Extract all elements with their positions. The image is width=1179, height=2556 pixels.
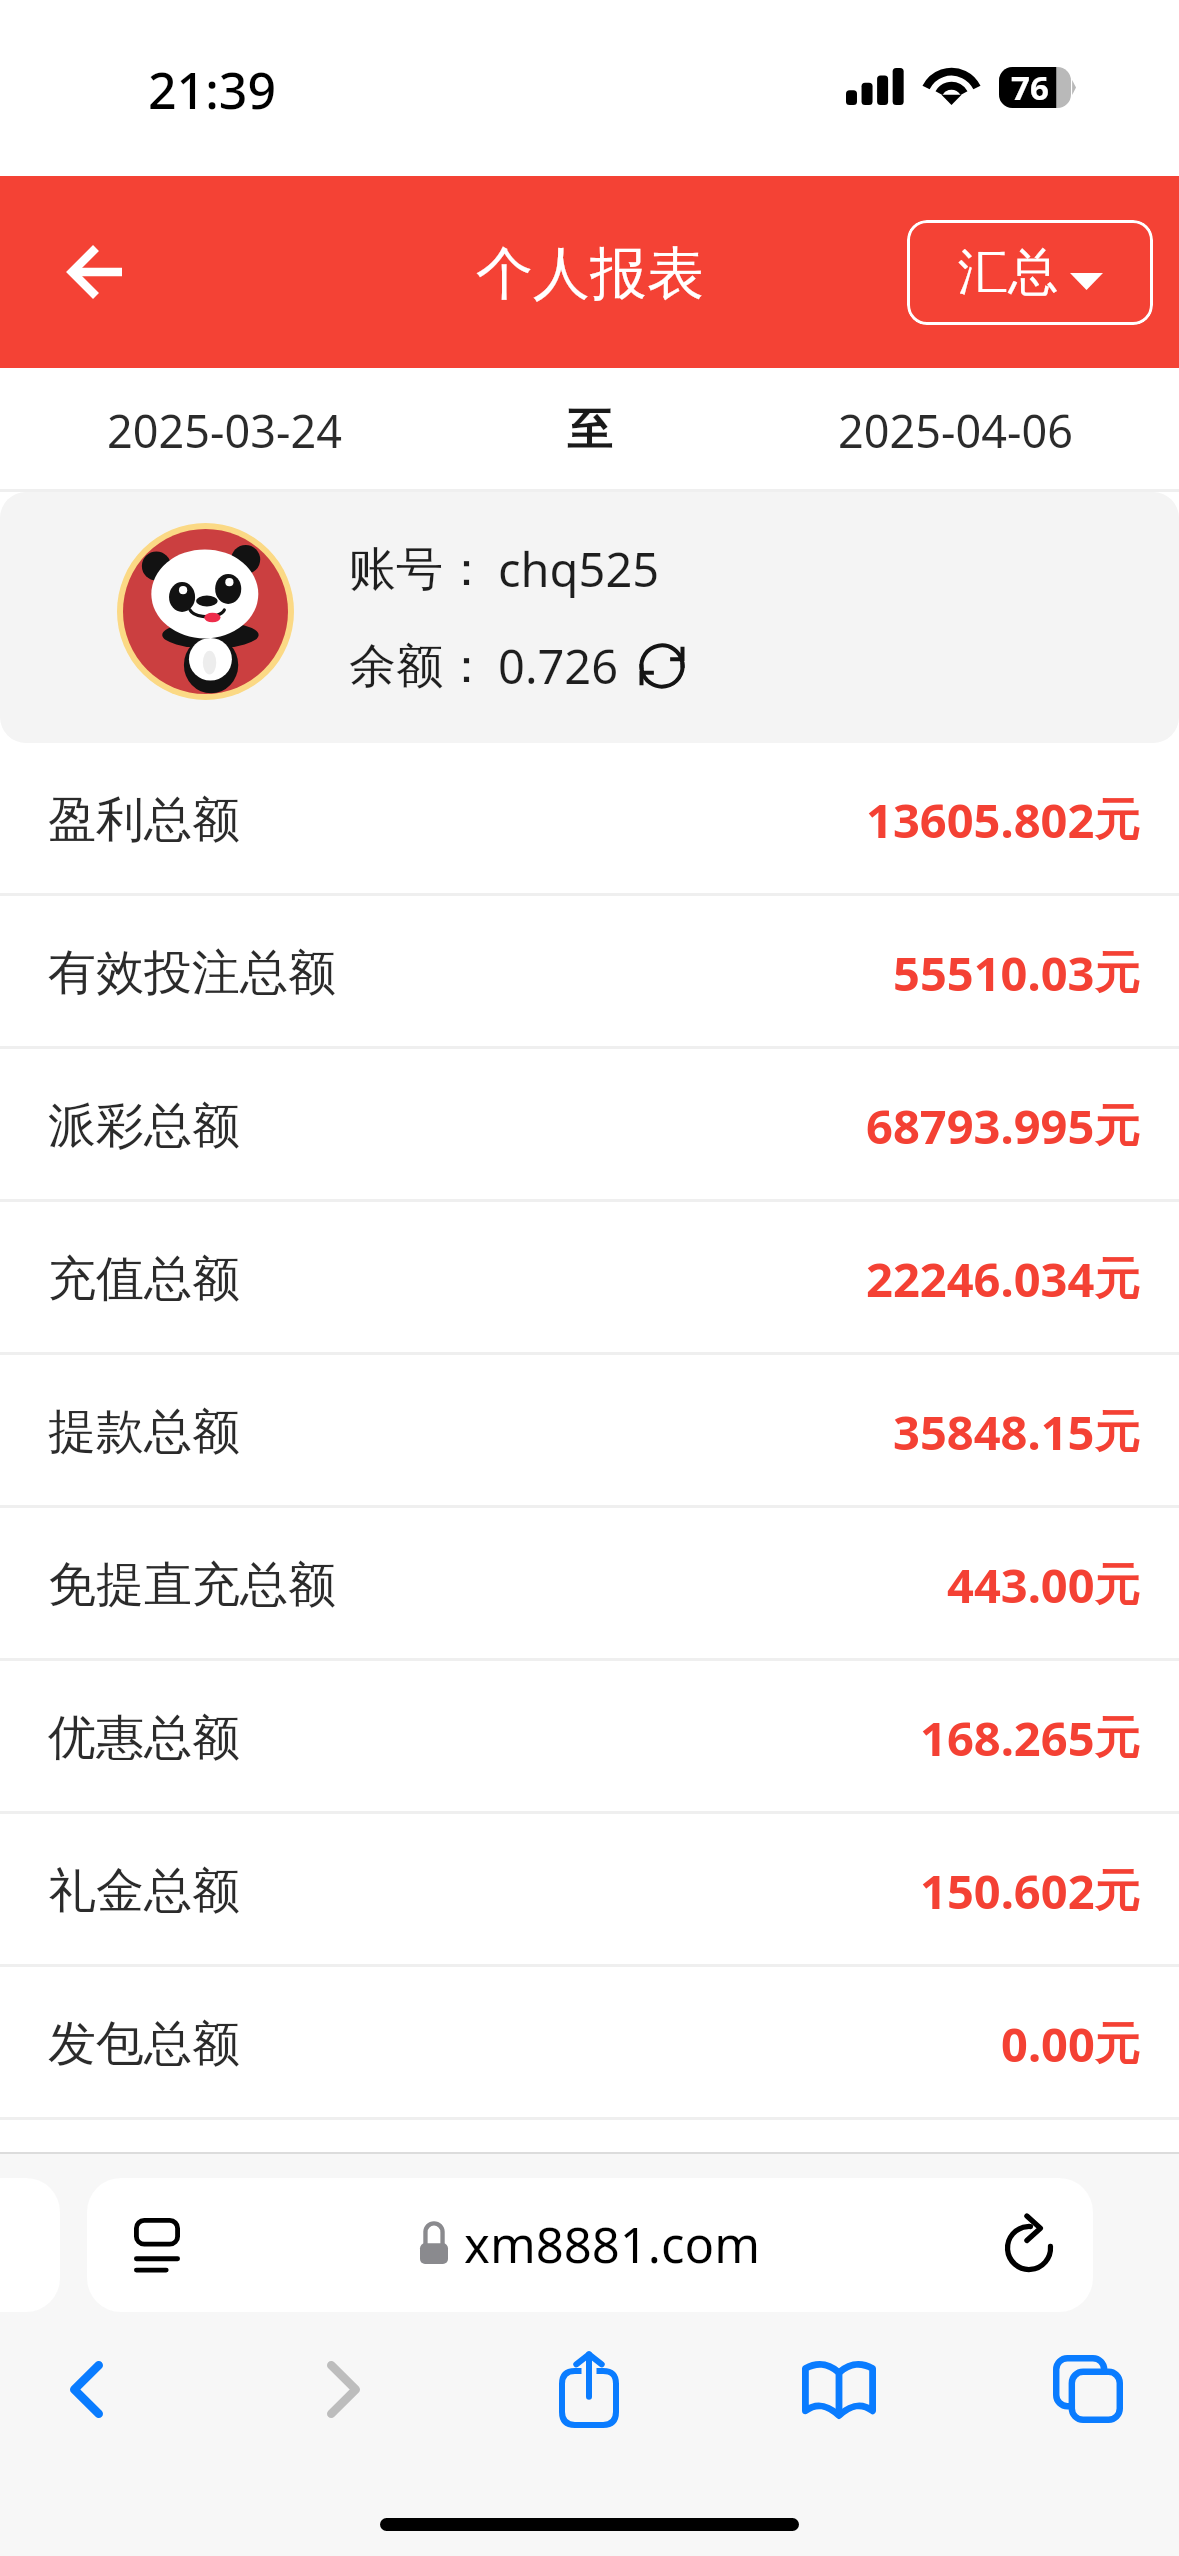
staticText: 派彩总额 [48,1096,240,1156]
staticText: 免提直充总额 [48,1555,336,1615]
staticText: 元 [1095,945,1140,1002]
staticText: 优惠总额 [48,1708,240,1768]
staticText: 168.265 [920,1706,1095,1770]
staticText: 元 [1095,1251,1140,1308]
staticText: chq525 [498,537,660,601]
button[interactable]: 发包总额 [0,1967,1179,2120]
staticText: 余额 [349,637,443,696]
staticText: 盈利总额 [48,790,240,850]
button[interactable]: 礼金总额 [0,1814,1179,1967]
staticText: 至 [567,402,612,459]
button[interactable]: Back [40,2343,132,2435]
staticText: 元 [1095,2016,1140,2073]
button[interactable]: 有效投注总额 [0,896,1179,1049]
button[interactable]: 盈利总额 [0,743,1179,896]
staticText: 元 [1095,1710,1140,1767]
staticText: 76 [1011,65,1049,106]
button[interactable]: Share [543,2343,635,2435]
button[interactable]: 免提直充总额 [0,1508,1179,1661]
staticText: 443.00 [947,1553,1095,1617]
button[interactable]: 提款总额 [0,1355,1179,1508]
button[interactable]: Reload [981,2198,1075,2292]
button[interactable]: Bookmarks [793,2343,885,2435]
staticText: 汇总 [958,241,1058,304]
staticText: 21:39 [148,56,276,124]
staticText: 13605.802 [866,788,1095,852]
staticText: 有效投注总额 [48,943,336,1003]
button[interactable]: Page settings [87,2178,1093,2312]
staticText: ： [443,540,477,599]
staticText: 元 [1095,1863,1140,1920]
button[interactable]: Page settings [110,2198,204,2292]
button[interactable]: 派彩总额 [0,1049,1179,1202]
staticText: 账号 [349,540,443,599]
staticText: 150.602 [920,1859,1095,1923]
staticText: 充值总额 [48,1249,240,1309]
staticText: 0.00 [1001,2012,1095,2076]
staticText: 2025-04-06 [838,400,1073,461]
staticText: 发包总额 [48,2014,240,2074]
staticText: 55510.03 [893,941,1095,1005]
staticText: 个人报表 [476,238,704,310]
button[interactable]: 汇总 [907,220,1153,325]
button[interactable]: 充值总额 [0,1202,1179,1355]
staticText: 68793.995 [866,1094,1095,1158]
button[interactable]: Tabs [1042,2343,1134,2435]
staticText: 元 [1095,1557,1140,1614]
staticText: 提款总额 [48,1402,240,1462]
button[interactable]: Forward [297,2343,389,2435]
staticText: 22246.034 [866,1247,1095,1311]
staticText: 元 [1095,1404,1140,1461]
staticText: 0.726 [498,634,619,698]
staticText: 元 [1095,792,1140,849]
button[interactable]: Refresh balance [633,637,691,695]
button[interactable]: 2025-03-24 [50,368,398,492]
staticText: 礼金总额 [48,1861,240,1921]
staticText: 35848.15 [893,1400,1095,1464]
staticText: 元 [1095,1098,1140,1155]
staticText: xm8881.com [464,2211,760,2278]
staticText: ： [443,637,477,696]
staticText: 2025-03-24 [107,400,342,461]
button[interactable]: 优惠总额 [0,1661,1179,1814]
button[interactable]: 2025-04-06 [781,368,1129,492]
button[interactable]: Back [56,231,138,313]
